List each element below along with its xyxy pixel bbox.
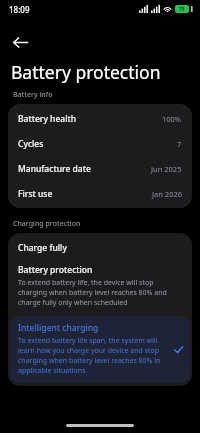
staticText: Jan 2026	[152, 189, 182, 199]
staticText: Intelligent charging	[18, 322, 99, 334]
staticText: To extend battery life span, the system …	[18, 336, 169, 376]
staticText: Cycles	[18, 138, 44, 150]
staticText: 75	[179, 6, 185, 13]
staticText: Battery info	[13, 90, 53, 100]
staticText: Battery protection	[11, 60, 161, 84]
button[interactable]: Battery health	[8, 106, 192, 131]
button[interactable]: Charge fully	[8, 236, 192, 259]
staticText: Manufacture date	[18, 163, 91, 175]
staticText: 7	[177, 139, 182, 149]
staticText: Charging protection	[13, 219, 81, 229]
button[interactable]: Battery protection	[8, 259, 192, 313]
staticText: 18:09	[9, 4, 30, 15]
staticText: To extend battery life, the device will …	[18, 278, 182, 308]
button[interactable]: Manufacture date	[8, 156, 192, 181]
staticText: Battery protection	[18, 264, 93, 276]
staticText: Jun 2025	[151, 164, 182, 174]
button[interactable]: Back	[4, 26, 36, 58]
staticText: 100%	[162, 114, 182, 124]
button[interactable]: Intelligent charging	[10, 316, 190, 383]
staticText: Battery health	[18, 113, 77, 125]
staticText: Charge fully	[18, 242, 67, 254]
button[interactable]: Cycles	[8, 131, 192, 156]
staticText: First use	[18, 188, 53, 200]
button[interactable]: First use	[8, 181, 192, 206]
